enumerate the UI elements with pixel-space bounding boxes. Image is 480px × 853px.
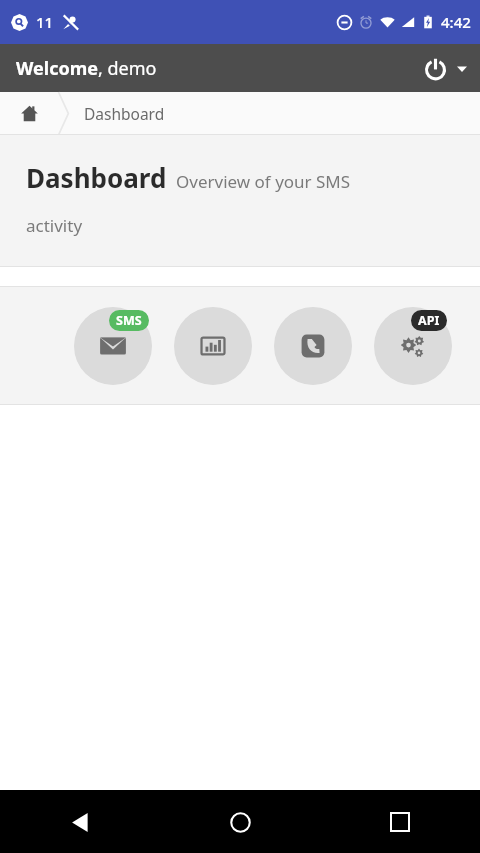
staticText: Dashboard xyxy=(84,103,165,124)
button[interactable]: Dashboard xyxy=(84,103,165,124)
staticText: , demo xyxy=(98,56,157,81)
staticText: activity xyxy=(26,214,83,237)
button[interactable]: Home xyxy=(213,795,267,849)
button[interactable]: Send SMS xyxy=(74,307,152,385)
staticText: SMS xyxy=(116,312,142,329)
staticText: 4:42 xyxy=(441,12,471,32)
staticText: 11 xyxy=(36,12,54,32)
staticText: Overview of your SMS xyxy=(176,170,351,193)
button[interactable]: Home xyxy=(0,92,58,135)
button[interactable]: Statistics xyxy=(174,307,252,385)
button[interactable]: Account menu, log out xyxy=(410,47,480,90)
staticText: Dashboard xyxy=(26,160,167,195)
staticText: Welcome xyxy=(16,56,98,81)
staticText: API xyxy=(418,312,440,329)
button[interactable]: Phone numbers xyxy=(274,307,352,385)
button[interactable]: Back xyxy=(53,795,107,849)
button[interactable]: API settings xyxy=(374,307,452,385)
button[interactable]: Recent apps xyxy=(373,795,427,849)
